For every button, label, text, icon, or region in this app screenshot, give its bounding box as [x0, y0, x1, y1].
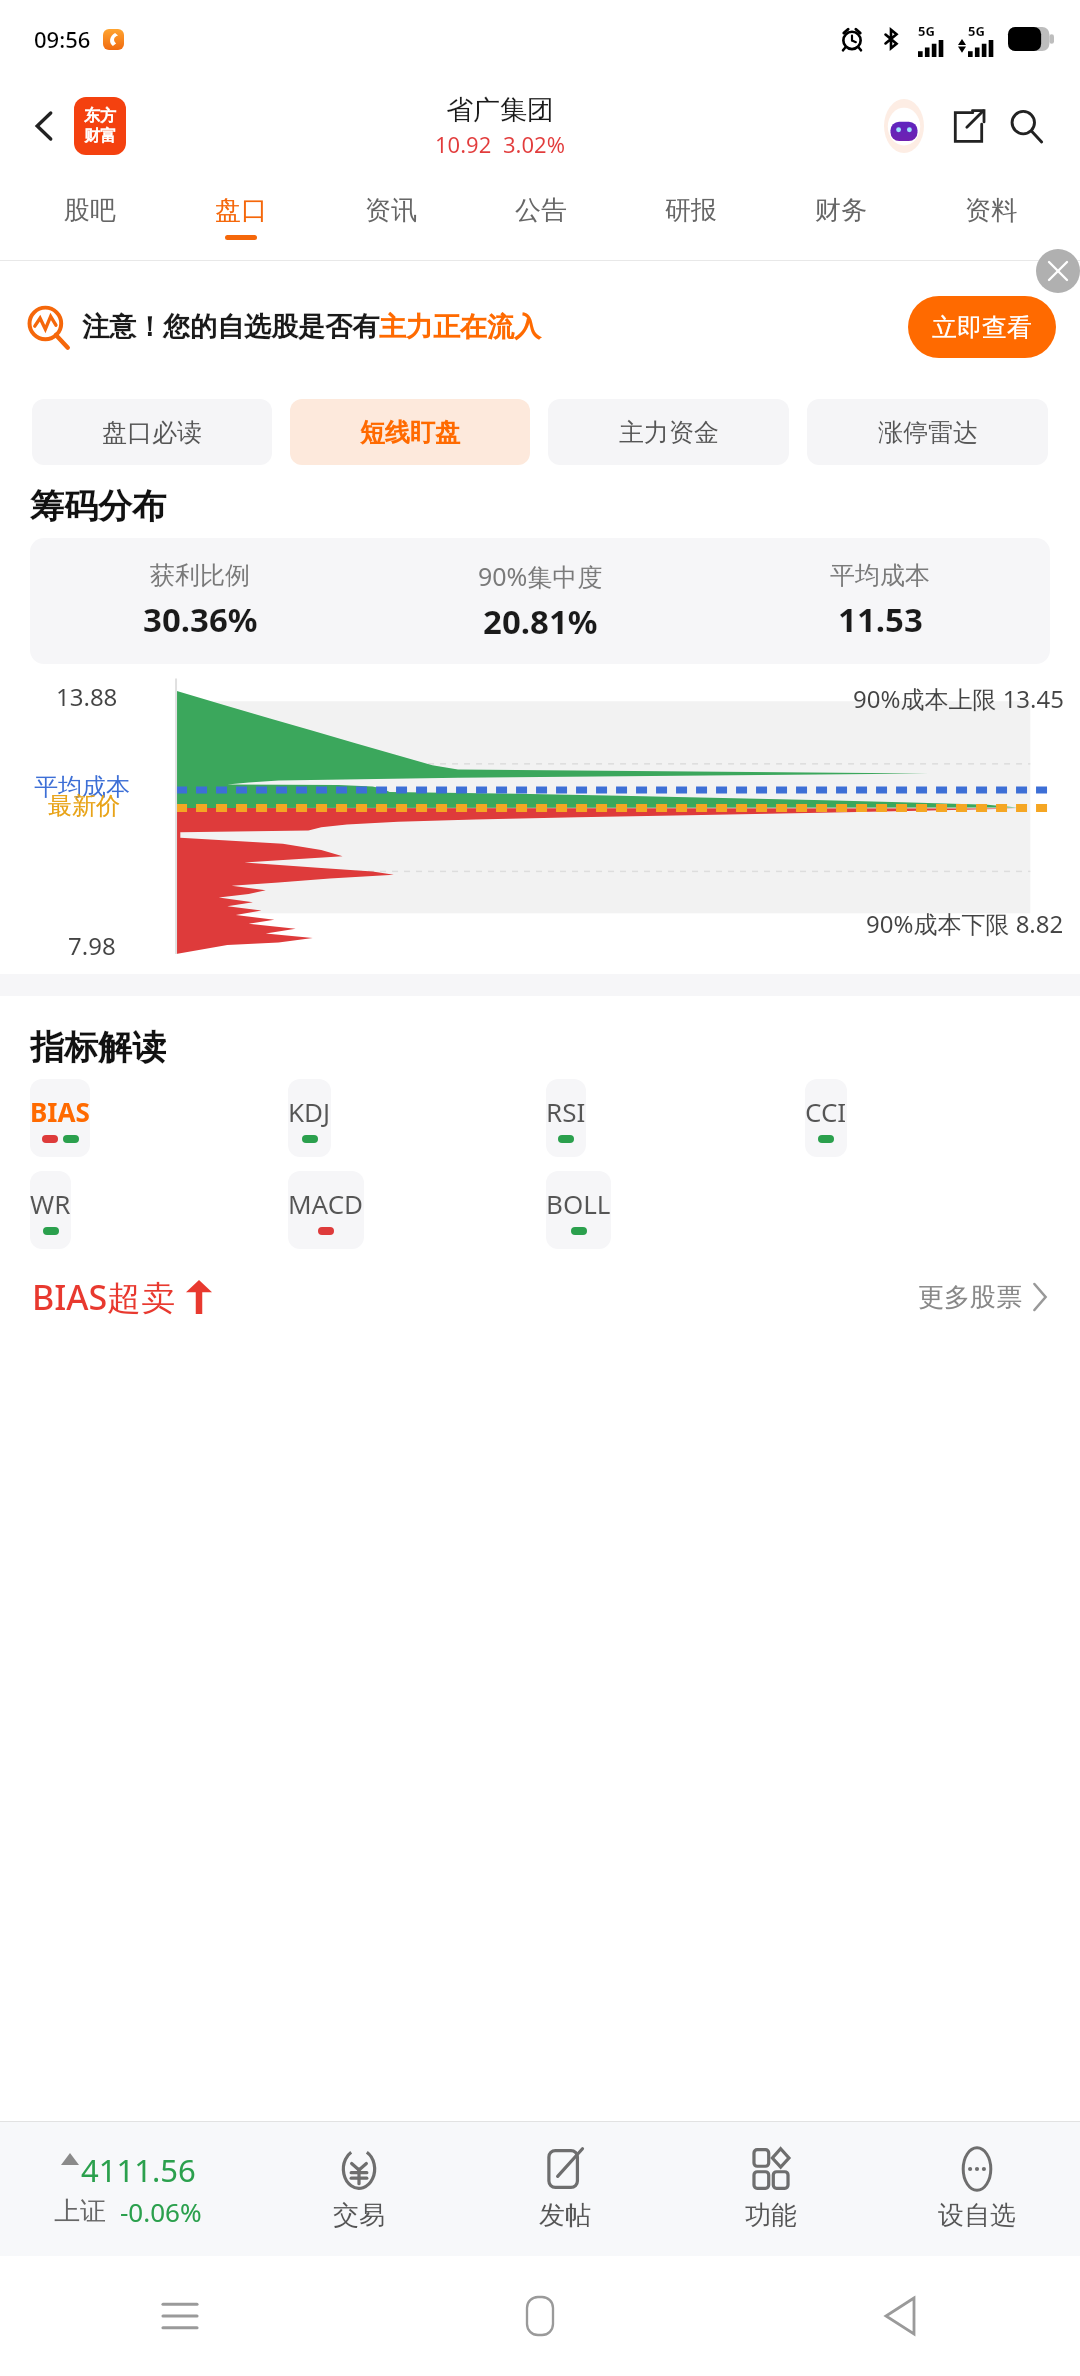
- button[interactable]: 立即查看: [908, 296, 1056, 358]
- button[interactable]: 主力资金: [548, 399, 789, 465]
- staticText: 10.92: [435, 129, 492, 159]
- staticText: 7.98: [68, 929, 116, 962]
- button[interactable]: 最近任务: [0, 2256, 360, 2376]
- button[interactable]: 搜索: [998, 98, 1054, 154]
- button[interactable]: 公告: [466, 174, 616, 260]
- staticText: 上证: [54, 2195, 106, 2228]
- staticText: 30.36%: [143, 597, 258, 642]
- button[interactable]: 4111.56: [0, 2122, 256, 2256]
- staticText: 90%成本下限 8.82: [866, 907, 1064, 940]
- button[interactable]: CCI: [805, 1079, 847, 1157]
- button[interactable]: 发帖: [462, 2122, 668, 2256]
- button[interactable]: 财务: [766, 174, 916, 260]
- staticText: BOLL: [546, 1186, 611, 1221]
- staticText: 3.02%: [503, 129, 565, 159]
- staticText: 财富: [84, 126, 116, 146]
- button[interactable]: BIAS超卖: [32, 1249, 1048, 1345]
- button[interactable]: 研报: [616, 174, 766, 260]
- button[interactable]: 盘口必读: [32, 399, 272, 465]
- staticText: KDJ: [288, 1094, 331, 1129]
- button[interactable]: 返回: [22, 103, 68, 149]
- staticText: 90%集中度: [478, 559, 603, 593]
- staticText: CCI: [805, 1094, 847, 1129]
- staticText: 筹码分布: [30, 485, 166, 528]
- button[interactable]: 主页: [360, 2256, 720, 2376]
- staticText: 90%成本上限 13.45: [853, 682, 1064, 715]
- button[interactable]: 设自选: [874, 2122, 1080, 2256]
- button[interactable]: BIAS: [30, 1079, 90, 1157]
- staticText: 4111.56: [81, 2149, 196, 2191]
- staticText: 省广集团: [446, 93, 554, 127]
- staticText: 平均成本: [34, 772, 130, 802]
- staticText: 平均成本: [830, 560, 930, 591]
- staticText: BIAS超卖: [32, 1274, 176, 1320]
- staticText: WR: [30, 1186, 71, 1221]
- button[interactable]: WR: [30, 1171, 71, 1249]
- staticText: 指标解读: [30, 1026, 166, 1069]
- button[interactable]: 分享: [940, 98, 996, 154]
- button[interactable]: MACD: [288, 1171, 364, 1249]
- staticText: 东方: [84, 106, 116, 126]
- staticText: 注意！您的自选股是否有: [82, 310, 379, 344]
- button[interactable]: 短线盯盘: [290, 399, 530, 465]
- staticText: 11.53: [838, 597, 923, 642]
- button[interactable]: 资料: [916, 174, 1066, 260]
- staticText: 20.81%: [483, 599, 598, 644]
- staticText: 资讯: [365, 194, 417, 227]
- staticText: 主力资金: [619, 417, 719, 448]
- staticText: 涨停雷达: [878, 417, 978, 448]
- staticText: 09:56: [34, 24, 91, 54]
- staticText: 公告: [515, 194, 567, 227]
- button[interactable]: 注意！您的自选股是否有: [26, 261, 1056, 393]
- staticText: BIAS: [30, 1094, 90, 1129]
- staticText: 交易: [333, 2199, 385, 2232]
- button[interactable]: KDJ: [288, 1079, 331, 1157]
- staticText: 最新价: [48, 791, 120, 821]
- staticText: 立即查看: [932, 312, 1032, 343]
- button[interactable]: 功能: [668, 2122, 874, 2256]
- staticText: 短线盯盘: [360, 417, 460, 448]
- staticText: 设自选: [938, 2199, 1016, 2232]
- staticText: 盘口必读: [102, 417, 202, 448]
- staticText: 主力正在流入: [379, 310, 541, 344]
- staticText: 财务: [815, 194, 867, 227]
- staticText: 资料: [965, 194, 1017, 227]
- button[interactable]: 资讯: [316, 174, 466, 260]
- staticText: 发帖: [539, 2199, 591, 2232]
- staticText: 研报: [665, 194, 717, 227]
- staticText: 盘口: [215, 194, 267, 227]
- staticText: 5G: [968, 22, 985, 40]
- staticText: 更多股票: [918, 1281, 1022, 1314]
- button[interactable]: 股吧: [14, 174, 165, 260]
- button[interactable]: 盘口: [165, 174, 316, 260]
- button[interactable]: 获利比例: [30, 538, 1050, 664]
- button[interactable]: 东方财富: [74, 97, 126, 155]
- button[interactable]: 关闭: [1036, 249, 1080, 293]
- button[interactable]: RSI: [546, 1079, 586, 1157]
- button[interactable]: AI助手: [874, 96, 934, 156]
- button[interactable]: BOLL: [546, 1171, 611, 1249]
- staticText: 5G: [918, 22, 935, 40]
- button[interactable]: 涨停雷达: [807, 399, 1048, 465]
- staticText: 功能: [745, 2199, 797, 2232]
- staticText: RSI: [546, 1094, 586, 1129]
- staticText: -0.06%: [120, 2194, 202, 2229]
- staticText: 获利比例: [150, 560, 250, 591]
- staticText: 13.88: [56, 680, 118, 713]
- staticText: MACD: [288, 1186, 364, 1221]
- button[interactable]: 返回: [720, 2256, 1080, 2376]
- button[interactable]: 省广集团: [435, 93, 565, 159]
- staticText: 股吧: [64, 194, 116, 227]
- button[interactable]: 交易: [256, 2122, 462, 2256]
